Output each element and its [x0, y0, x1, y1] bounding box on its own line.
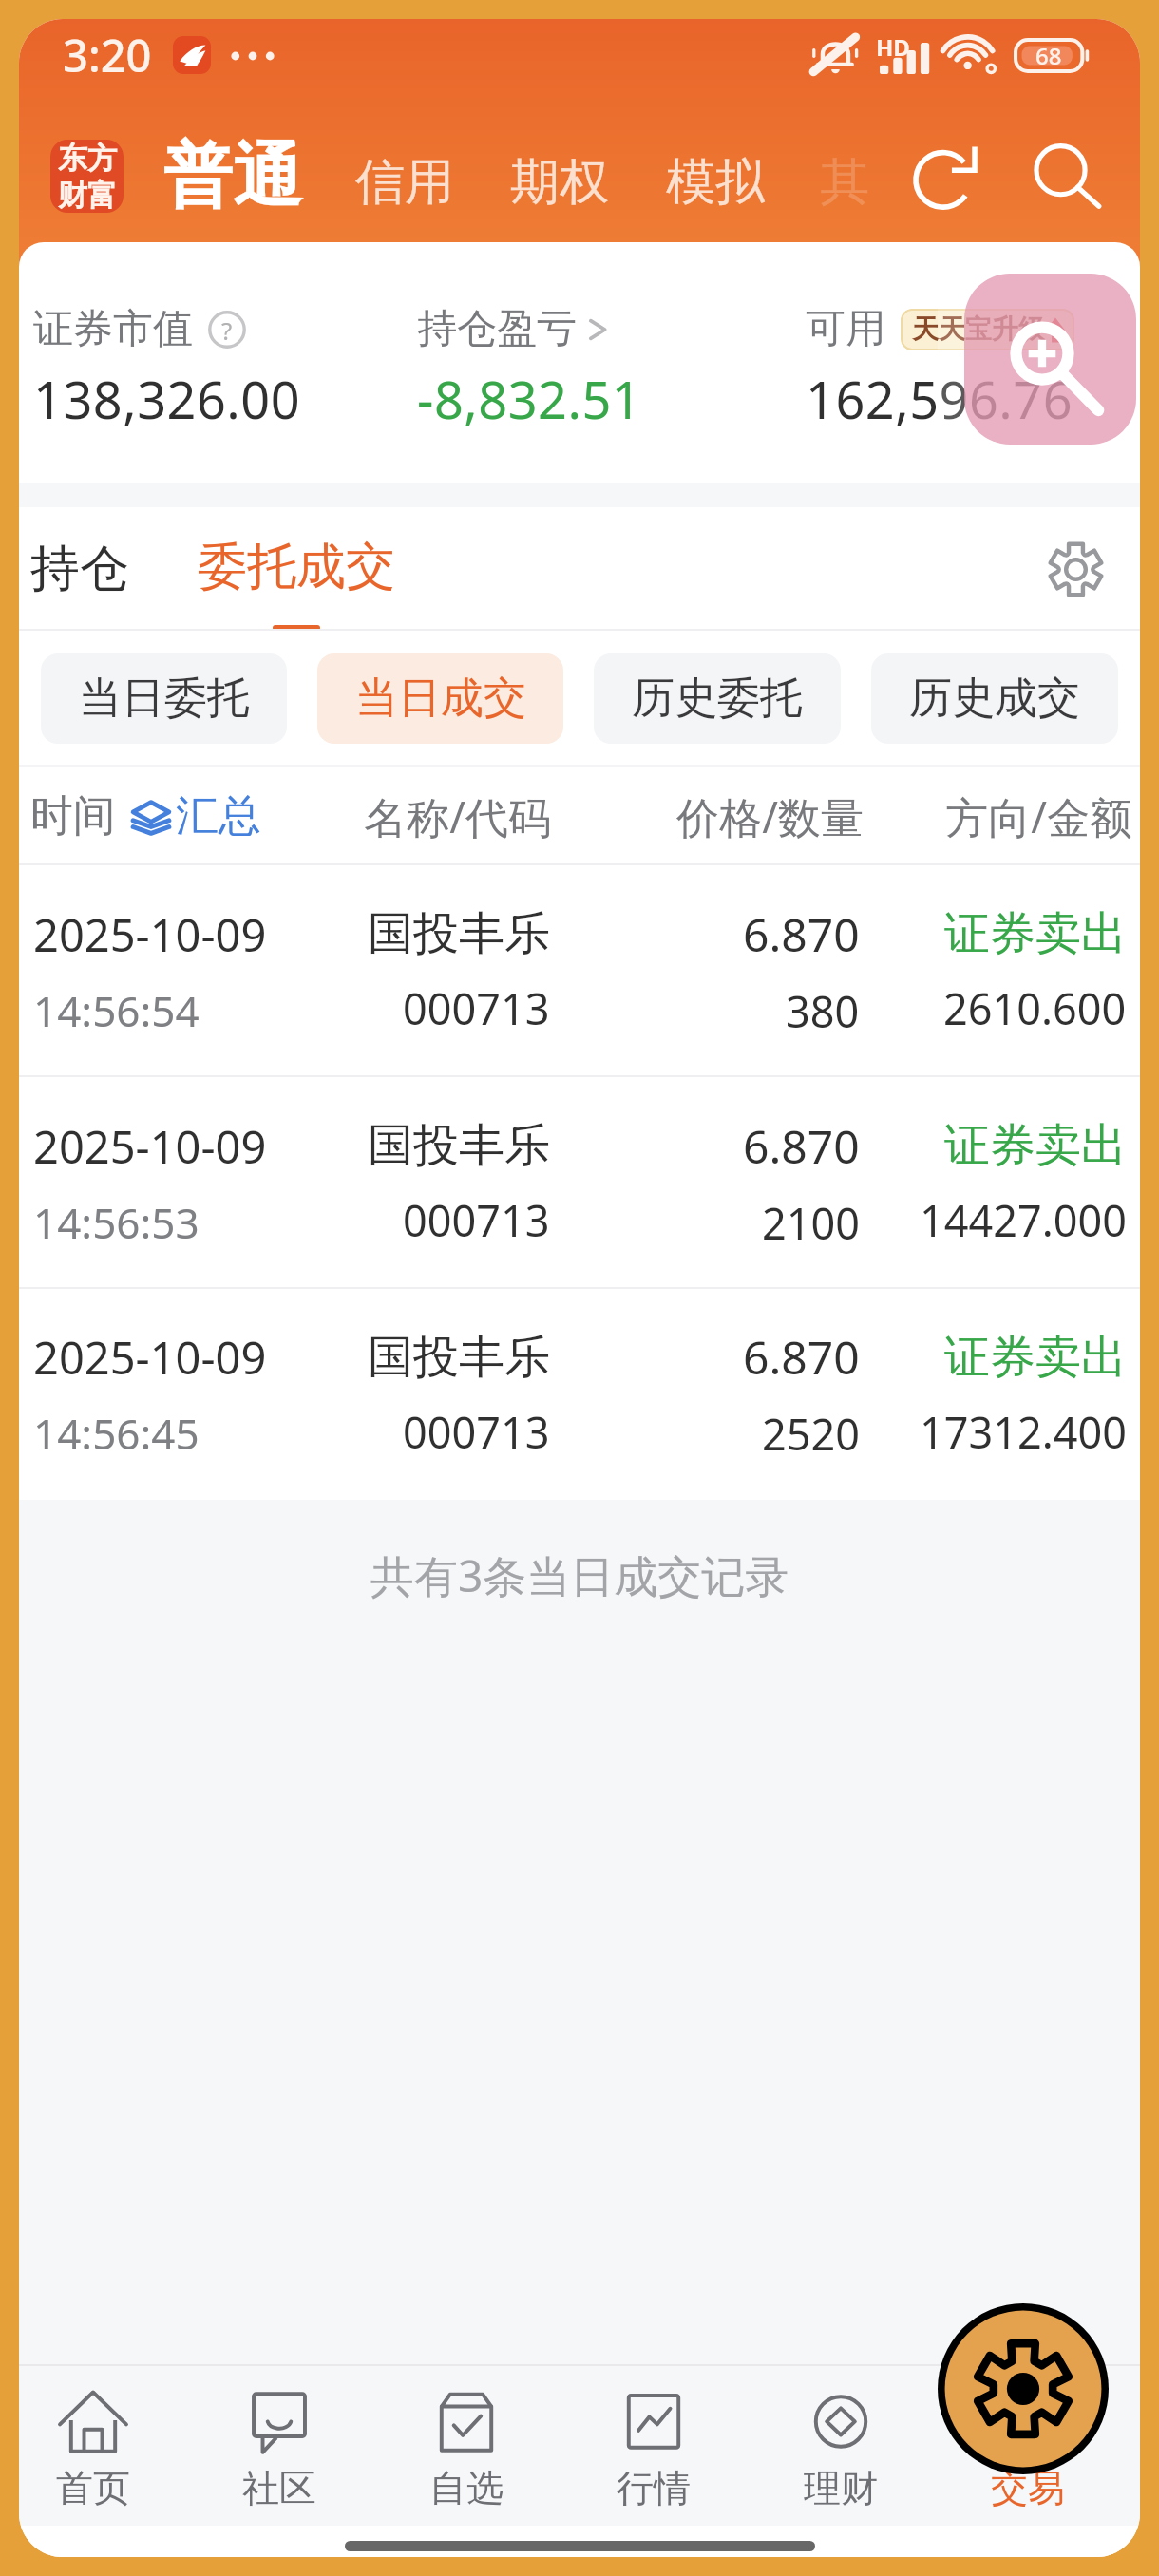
- staticText: 000713: [403, 1403, 550, 1461]
- staticText: 2025-10-09: [33, 1116, 267, 1177]
- staticText: 当日成交: [355, 672, 526, 726]
- staticText: 历史委托: [632, 672, 803, 726]
- staticText: 共有3条当日成交记录: [370, 1545, 789, 1605]
- staticText: 国投丰乐: [368, 905, 550, 962]
- staticText: 社区: [242, 2465, 316, 2511]
- button[interactable]: 2025-10-09: [19, 865, 1140, 1077]
- button[interactable]: 模拟: [656, 130, 774, 235]
- button[interactable]: 2025-10-09: [19, 1289, 1140, 1500]
- staticText: 其: [820, 151, 869, 214]
- staticText: 行情: [617, 2465, 691, 2511]
- staticText: 名称/代码: [343, 787, 551, 845]
- button[interactable]: 社区: [186, 2364, 372, 2526]
- staticText: ?: [221, 313, 233, 347]
- button[interactable]: 历史委托: [594, 653, 841, 744]
- button[interactable]: 汇总: [131, 789, 261, 843]
- staticText: 证券卖出: [944, 1117, 1127, 1174]
- button[interactable]: Refresh: [894, 127, 998, 226]
- staticText: 财富: [58, 177, 117, 213]
- staticText: HD: [876, 31, 910, 63]
- staticText: 模拟: [666, 151, 765, 214]
- button[interactable]: Search: [1015, 127, 1119, 226]
- staticText: 14:56:45: [33, 1405, 199, 1462]
- button[interactable]: 当日成交: [317, 653, 563, 744]
- staticText: 信用: [355, 151, 454, 214]
- staticText: 162,596.76: [806, 364, 1073, 434]
- staticText: 14427.000: [920, 1191, 1127, 1249]
- staticText: 2100: [762, 1194, 860, 1252]
- button[interactable]: 自选: [372, 2364, 560, 2526]
- staticText: 价格/数量: [551, 787, 864, 845]
- staticText: 持仓盈亏: [417, 304, 577, 354]
- staticText: 14:56:53: [33, 1194, 199, 1251]
- staticText: 国投丰乐: [368, 1329, 550, 1386]
- staticText: 理财: [804, 2465, 878, 2511]
- staticText: 普通: [163, 133, 302, 220]
- staticText: 14:56:54: [33, 982, 199, 1039]
- staticText: 3:20: [63, 25, 152, 85]
- staticText: 68: [1035, 40, 1062, 71]
- staticText: 期权: [510, 151, 609, 214]
- staticText: 6.870: [743, 1115, 860, 1177]
- staticText: 2025-10-09: [33, 1327, 267, 1388]
- staticText: 可用: [806, 304, 885, 354]
- button[interactable]: 普通: [163, 116, 302, 237]
- button[interactable]: 行情: [560, 2364, 747, 2526]
- staticText: 2520: [762, 1405, 860, 1463]
- staticText: 首页: [56, 2465, 130, 2511]
- staticText: 委托成交: [198, 536, 395, 598]
- button[interactable]: 交易: [934, 2364, 1121, 2526]
- button[interactable]: 首页: [19, 2364, 186, 2526]
- staticText: 6.870: [743, 1326, 860, 1388]
- button[interactable]: 东方: [50, 140, 123, 213]
- staticText: 交易: [991, 2465, 1065, 2511]
- staticText: 138,326.00: [33, 364, 301, 434]
- staticText: 时间: [30, 789, 116, 843]
- button[interactable]: 当日委托: [41, 653, 287, 744]
- staticText: 国投丰乐: [368, 1117, 550, 1174]
- button[interactable]: 历史成交: [871, 653, 1118, 744]
- staticText: 6.870: [743, 903, 860, 965]
- button[interactable]: 持仓: [30, 528, 129, 610]
- staticText: 当日委托: [79, 672, 250, 726]
- staticText: 持仓: [30, 538, 129, 600]
- staticText: 证券市值: [33, 304, 193, 354]
- staticText: 东方: [58, 140, 117, 177]
- staticText: 380: [786, 982, 860, 1040]
- staticText: 2610.600: [943, 979, 1127, 1037]
- staticText: 天天宝升级: [912, 313, 1045, 346]
- staticText: 2025-10-09: [33, 904, 267, 965]
- staticText: 000713: [403, 979, 550, 1037]
- staticText: 方向/金额: [864, 787, 1132, 845]
- button[interactable]: 2025-10-09: [19, 1077, 1140, 1289]
- staticText: 汇总: [176, 789, 261, 843]
- staticText: 历史成交: [909, 672, 1080, 726]
- button[interactable]: Settings: [1030, 523, 1121, 615]
- staticText: 17312.400: [920, 1403, 1127, 1461]
- staticText: 证券卖出: [944, 905, 1127, 962]
- button[interactable]: Zoom in: [964, 274, 1136, 445]
- staticText: 自选: [429, 2465, 503, 2511]
- button[interactable]: 信用: [346, 130, 464, 235]
- button[interactable]: 持仓盈亏: [417, 304, 609, 354]
- button[interactable]: 期权: [501, 130, 618, 235]
- button[interactable]: 天天宝升级: [901, 309, 1074, 350]
- button[interactable]: 理财: [747, 2364, 934, 2526]
- staticText: 000713: [403, 1191, 550, 1249]
- staticText: 证券卖出: [944, 1329, 1127, 1386]
- button[interactable]: 委托成交: [198, 507, 395, 631]
- staticText: -8,832.51: [417, 364, 642, 434]
